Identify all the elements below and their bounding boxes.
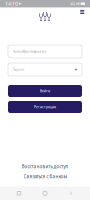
button[interactable]: Back (64, 187, 78, 200)
button[interactable]: Menu (77, 7, 87, 17)
staticText: Связаться с банком (23, 173, 66, 180)
staticText: Войти (40, 89, 50, 93)
staticText: Логин/Идентификатор (12, 49, 46, 54)
button[interactable]: Recent apps (12, 187, 26, 200)
staticText: 14:10 (5, 0, 18, 7)
button[interactable]: Регистрация (8, 101, 82, 113)
button[interactable]: Восстановить доступ (8, 163, 82, 169)
button[interactable]: Войти (8, 85, 82, 97)
staticText: Пароль (12, 67, 24, 72)
staticText: Восстановить доступ (21, 163, 68, 170)
button[interactable]: Home (38, 187, 52, 200)
button[interactable]: Связаться с банком (8, 173, 82, 179)
staticText: 4G (70, 1, 75, 6)
staticText: Регистрация (34, 105, 56, 109)
